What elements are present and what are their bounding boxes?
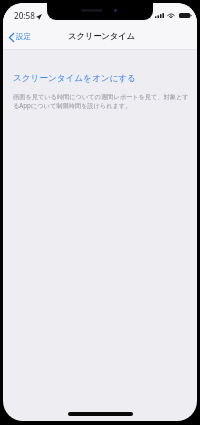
staticText: 設定	[16, 32, 32, 42]
staticText: スクリーンタイムをオンにする	[13, 73, 136, 84]
button[interactable]: スクリーンタイムをオンにする	[3, 73, 197, 84]
staticText: 画面を見ている時間についての週間レポートを見て、対象とするAppについて制限時間…	[13, 93, 192, 109]
staticText: 20:58	[14, 10, 35, 21]
staticText: スクリーンタイム	[68, 31, 135, 41]
button[interactable]: 設定に戻る	[5, 30, 36, 44]
